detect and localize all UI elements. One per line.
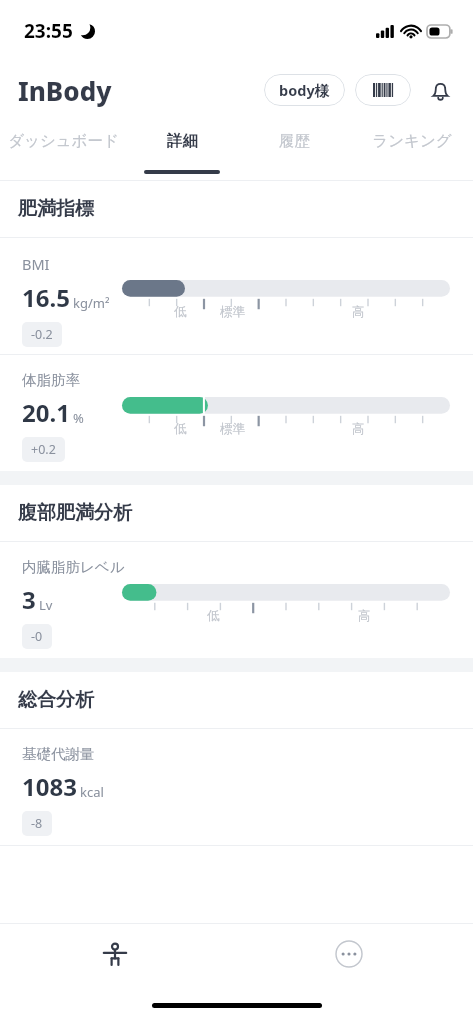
- staticText: %: [73, 409, 84, 427]
- staticText: -0: [31, 628, 43, 645]
- staticText: 23:55: [24, 18, 73, 44]
- staticText: 低: [174, 304, 187, 320]
- button[interactable]: 内臓脂肪レベル: [0, 542, 473, 658]
- staticText: 16.5: [22, 281, 70, 314]
- button[interactable]: 履歴: [238, 118, 350, 180]
- staticText: 腹部肥満分析: [18, 501, 132, 525]
- staticText: BMI: [22, 254, 50, 274]
- button[interactable]: Barcode: [355, 74, 411, 106]
- staticText: +0.2: [31, 441, 56, 458]
- staticText: 低: [207, 608, 220, 624]
- button[interactable]: BMI: [0, 238, 473, 354]
- staticText: 20.1: [22, 396, 70, 429]
- staticText: 高: [352, 421, 365, 437]
- staticText: 総合分析: [18, 688, 94, 712]
- staticText: InBody: [18, 73, 112, 108]
- staticText: 高: [352, 304, 365, 320]
- staticText: -0.2: [31, 326, 53, 343]
- staticText: kg/m²: [73, 294, 110, 312]
- staticText: 肥満指標: [18, 197, 94, 221]
- staticText: body様: [279, 80, 330, 100]
- staticText: ランキング: [372, 131, 452, 151]
- staticText: -8: [31, 815, 43, 832]
- staticText: 標準: [220, 421, 245, 437]
- button[interactable]: 基礎代謝量: [0, 729, 473, 845]
- button[interactable]: ランキング: [350, 118, 473, 180]
- button[interactable]: body様: [264, 74, 345, 106]
- button[interactable]: 詳細: [126, 118, 238, 180]
- staticText: 詳細: [167, 131, 198, 151]
- staticText: 体脂肪率: [22, 371, 80, 389]
- button[interactable]: 体脂肪率: [0, 355, 473, 471]
- staticText: ダッシュボード: [8, 131, 119, 151]
- button[interactable]: Notifications: [423, 73, 457, 107]
- staticText: 高: [358, 608, 371, 624]
- button[interactable]: More options: [327, 932, 371, 976]
- staticText: 低: [174, 421, 187, 437]
- staticText: 標準: [220, 304, 245, 320]
- button[interactable]: ダッシュボード: [0, 118, 126, 180]
- button[interactable]: Body composition: [90, 930, 140, 980]
- staticText: Lv: [39, 596, 53, 614]
- staticText: 3: [22, 583, 36, 616]
- staticText: kcal: [80, 783, 104, 801]
- staticText: 内臓脂肪レベル: [22, 558, 125, 576]
- staticText: 基礎代謝量: [22, 745, 95, 763]
- staticText: 1083: [22, 770, 77, 803]
- staticText: 履歴: [279, 131, 310, 151]
